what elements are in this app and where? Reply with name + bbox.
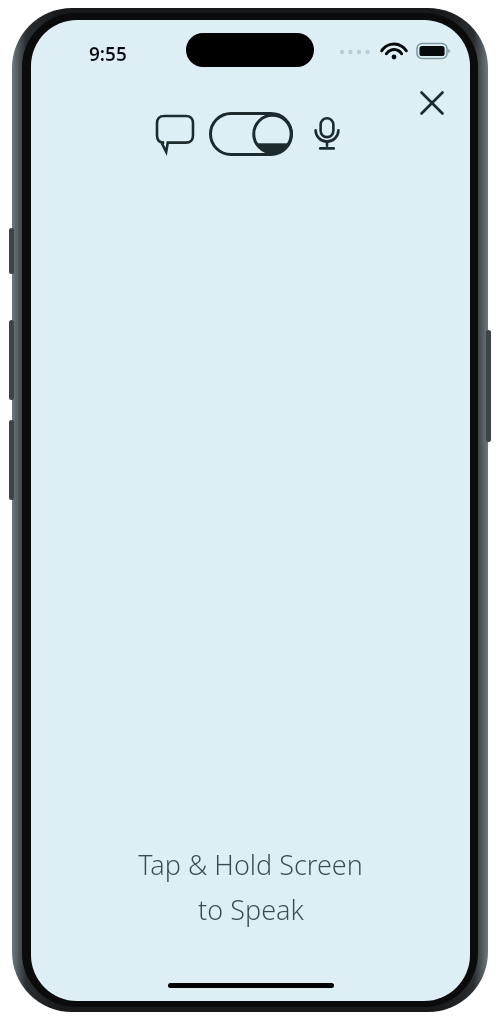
staticText: 9:55 (89, 41, 127, 67)
button[interactable]: Text mode (149, 108, 201, 160)
staticText: Tap & Hold Screen (138, 846, 363, 883)
staticText: to Speak (198, 891, 304, 928)
button[interactable]: Tap & Hold Screen (31, 846, 470, 928)
button[interactable]: Close (408, 79, 456, 127)
button[interactable]: Voice mode (301, 108, 353, 160)
button[interactable]: Toggle text and voice mode (209, 112, 293, 156)
